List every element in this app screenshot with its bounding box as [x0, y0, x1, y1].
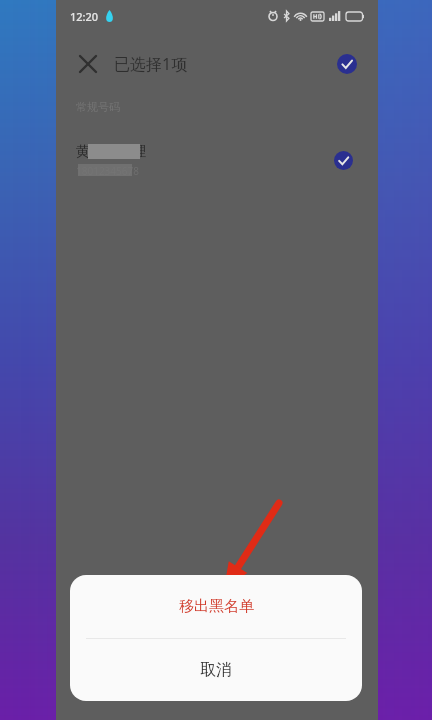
staticText: 已选择1项 — [114, 53, 188, 75]
button[interactable]: Select all — [332, 49, 362, 79]
button[interactable]: Close — [72, 48, 104, 80]
button[interactable]: 移出黑名单 — [70, 575, 362, 638]
staticText: 黄小明办理 — [76, 143, 146, 161]
button[interactable]: 取消 — [70, 639, 362, 701]
staticText: 移出黑名单 — [179, 597, 254, 616]
staticText: 常规号码 — [76, 100, 120, 114]
button[interactable]: 黄小明办理 — [56, 132, 378, 188]
staticText: 取消 — [200, 660, 232, 680]
staticText: 18012345678 — [76, 164, 139, 178]
staticText: 12:20 — [70, 9, 99, 24]
button[interactable]: Selected — [328, 145, 358, 175]
